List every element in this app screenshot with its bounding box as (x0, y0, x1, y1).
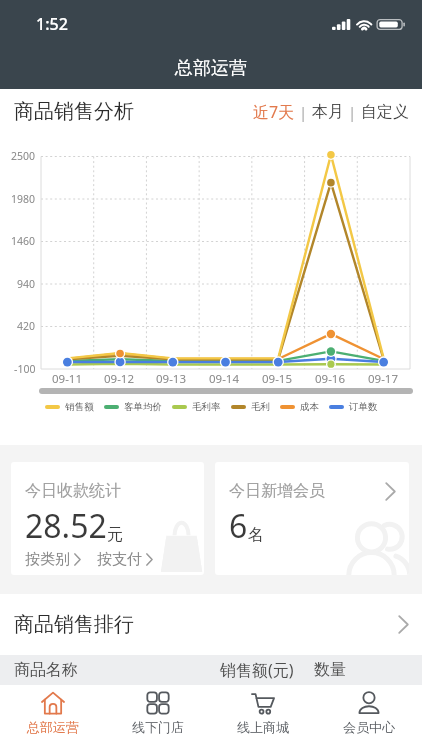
button[interactable]: 近7天 (253, 101, 295, 123)
button[interactable]: 自定义 (361, 102, 409, 122)
staticText: 名 (248, 525, 264, 545)
button[interactable]: 本月 (312, 102, 344, 122)
button[interactable]: 线上商城 (210, 685, 316, 750)
staticText: 元 (107, 525, 123, 545)
staticText: 总部运营 (27, 719, 79, 735)
button[interactable]: 会员中心 (316, 685, 422, 750)
button[interactable]: 商品销售排行 (0, 594, 422, 655)
staticText: 420 (17, 319, 36, 333)
button[interactable]: 总部运营 (0, 685, 105, 750)
staticText: | (344, 102, 361, 122)
staticText: 毛利率 (192, 401, 221, 413)
staticText: 商品名称 (14, 660, 78, 680)
staticText: 09-14 (209, 371, 240, 387)
staticText: 线上商城 (237, 719, 289, 735)
staticText: 数量 (314, 660, 346, 680)
staticText: 1460 (11, 234, 36, 248)
staticText: | (295, 102, 312, 122)
staticText: 28.52 (25, 504, 107, 548)
staticText: 客单均价 (124, 401, 162, 413)
staticText: 销售额 (65, 401, 94, 413)
staticText: 今日收款统计 (25, 481, 121, 501)
staticText: 本月 (312, 102, 344, 122)
staticText: 09-16 (315, 371, 346, 387)
staticText: 09-15 (262, 371, 293, 387)
button[interactable]: 线下门店 (105, 685, 210, 750)
staticText: 09-13 (156, 371, 187, 387)
staticText: 940 (17, 277, 36, 291)
button[interactable]: 今日收款统计 (11, 462, 204, 575)
other: Status icons (332, 19, 404, 30)
staticText: 近7天 (253, 101, 295, 123)
staticText: 商品销售分析 (14, 99, 134, 124)
staticText: 销售额(元) (220, 659, 294, 681)
staticText: 按类别 (25, 550, 70, 569)
staticText: 09-12 (104, 371, 135, 387)
staticText: 1:52 (36, 13, 68, 35)
staticText: 今日新增会员 (229, 481, 325, 501)
staticText: 09-11 (52, 371, 83, 387)
staticText: 毛利 (251, 401, 270, 413)
staticText: 自定义 (361, 102, 409, 122)
staticText: 订单数 (349, 401, 378, 413)
staticText: 1980 (11, 192, 36, 206)
button[interactable]: 按支付 (97, 550, 153, 569)
staticText: 按支付 (97, 550, 142, 569)
staticText: 总部运营 (175, 57, 247, 80)
staticText: 6 (229, 504, 248, 548)
staticText: 会员中心 (343, 719, 395, 735)
staticText: 成本 (300, 401, 319, 413)
staticText: -100 (14, 362, 36, 376)
staticText: 09-17 (368, 371, 399, 387)
staticText: 2500 (11, 149, 36, 163)
button[interactable]: 按类别 (25, 550, 81, 569)
staticText: 商品销售排行 (14, 612, 134, 637)
staticText: 线下门店 (132, 719, 184, 735)
button[interactable]: 今日新增会员 (215, 462, 409, 575)
